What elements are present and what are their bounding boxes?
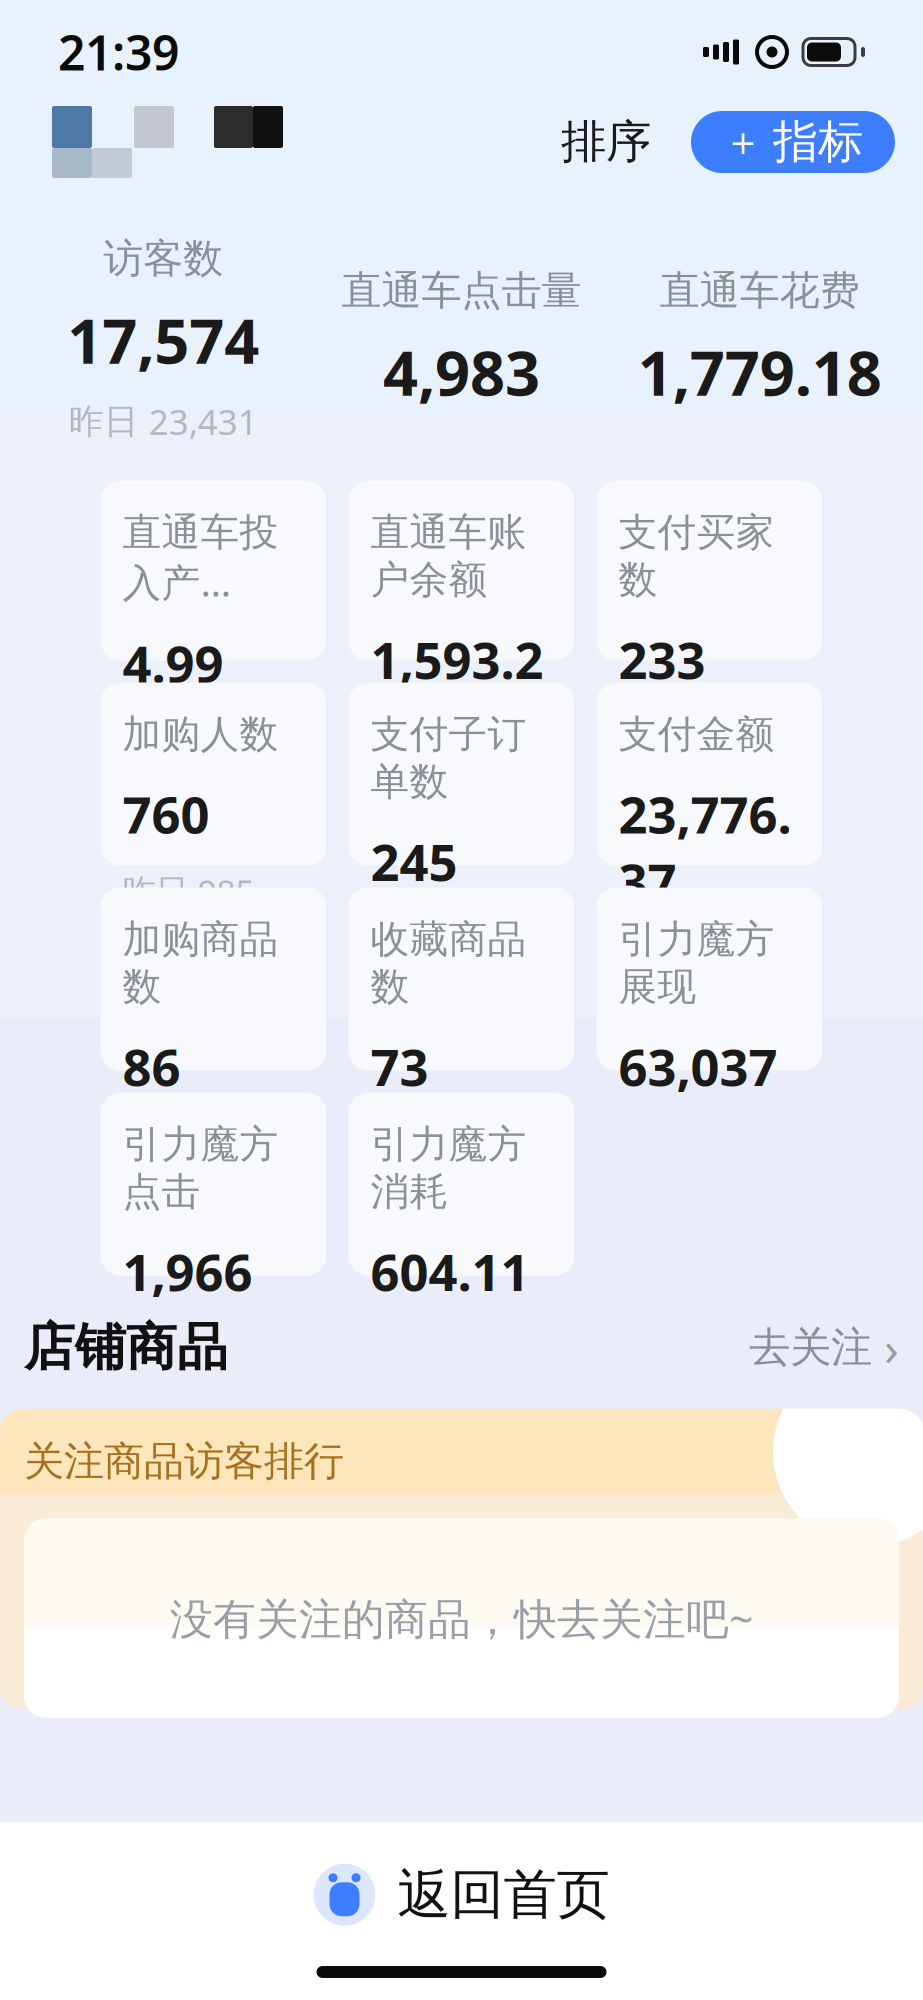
staticText: 73: [370, 1033, 428, 1100]
staticText: 支付金额: [618, 711, 774, 758]
staticText: 昨日: [69, 400, 139, 443]
staticText: 引力魔方消耗: [370, 1121, 526, 1216]
staticText: 17,574: [67, 299, 259, 380]
staticText: 没有关注的商品，快去关注吧~: [170, 1590, 753, 1646]
button[interactable]: 引力魔方点击: [100, 1093, 326, 1276]
staticText: 760: [122, 780, 209, 847]
button[interactable]: 直通车投入产…: [100, 481, 326, 661]
staticText: 604.11: [370, 1238, 529, 1305]
staticText: 关注商品访客排行: [24, 1437, 344, 1486]
staticText: 233: [618, 626, 705, 693]
staticText: 23,431: [149, 399, 258, 445]
staticText: 231: [693, 715, 750, 759]
staticText: 引力魔方展现: [618, 916, 774, 1011]
staticText: 4,983: [383, 331, 540, 412]
button[interactable]: ＋: [691, 111, 895, 173]
button[interactable]: 支付金额: [596, 683, 822, 866]
staticText: 236: [445, 917, 502, 961]
staticText: 直通车账户余额: [370, 509, 526, 604]
staticText: 支付买家数: [618, 509, 774, 604]
button[interactable]: 返回首页: [273, 1848, 649, 1941]
staticText: 昨日: [122, 871, 188, 912]
button[interactable]: 引力魔方消耗: [348, 1093, 574, 1276]
staticText: 返回首页: [397, 1862, 609, 1927]
button[interactable]: 加购人数: [100, 683, 326, 866]
staticText: 引力魔方点击: [122, 1121, 278, 1216]
button[interactable]: 排序: [555, 106, 657, 178]
button[interactable]: 去关注: [749, 1310, 899, 1385]
staticText: 23,776.37: [618, 780, 791, 915]
staticText: ›: [884, 1316, 899, 1379]
button[interactable]: 支付买家数: [596, 481, 822, 661]
staticText: 店铺商品: [24, 1316, 228, 1379]
staticText: 支付子订单数: [370, 711, 526, 806]
staticText: 直通车花费: [660, 266, 860, 315]
button[interactable]: 引力魔方展现: [596, 888, 822, 1071]
staticText: 访客数: [103, 234, 223, 283]
staticText: 24,790.57: [693, 937, 797, 1025]
staticText: 加购商品数: [122, 916, 278, 1011]
button[interactable]: 加购商品数: [100, 888, 326, 1071]
staticText: 1,779.18: [638, 331, 882, 412]
staticText: 昨日: [618, 960, 684, 1001]
staticText: 86: [122, 1033, 180, 1100]
staticText: 昨日: [370, 918, 436, 959]
staticText: 指标: [773, 114, 863, 170]
staticText: 63,037: [618, 1033, 777, 1100]
staticText: 21:39: [58, 20, 179, 84]
staticText: 直通车投入产…: [122, 509, 278, 607]
staticText: 加购人数: [122, 711, 278, 758]
staticText: 昨日: [618, 716, 684, 757]
staticText: ＋: [723, 117, 763, 166]
button[interactable]: 支付子订单数: [348, 683, 574, 866]
staticText: 直通车点击量: [341, 266, 581, 315]
staticText: 4.99: [122, 629, 223, 697]
staticText: 245: [370, 828, 457, 895]
staticText: 收藏商品数: [370, 916, 526, 1011]
staticText: 排序: [561, 114, 651, 170]
staticText: 985: [197, 869, 254, 914]
button[interactable]: 收藏商品数: [348, 888, 574, 1071]
staticText: 去关注: [749, 1322, 872, 1373]
staticText: 1,593.28: [370, 626, 543, 760]
staticText: 1,966: [122, 1238, 252, 1305]
button[interactable]: 直通车账户余额: [348, 481, 574, 661]
